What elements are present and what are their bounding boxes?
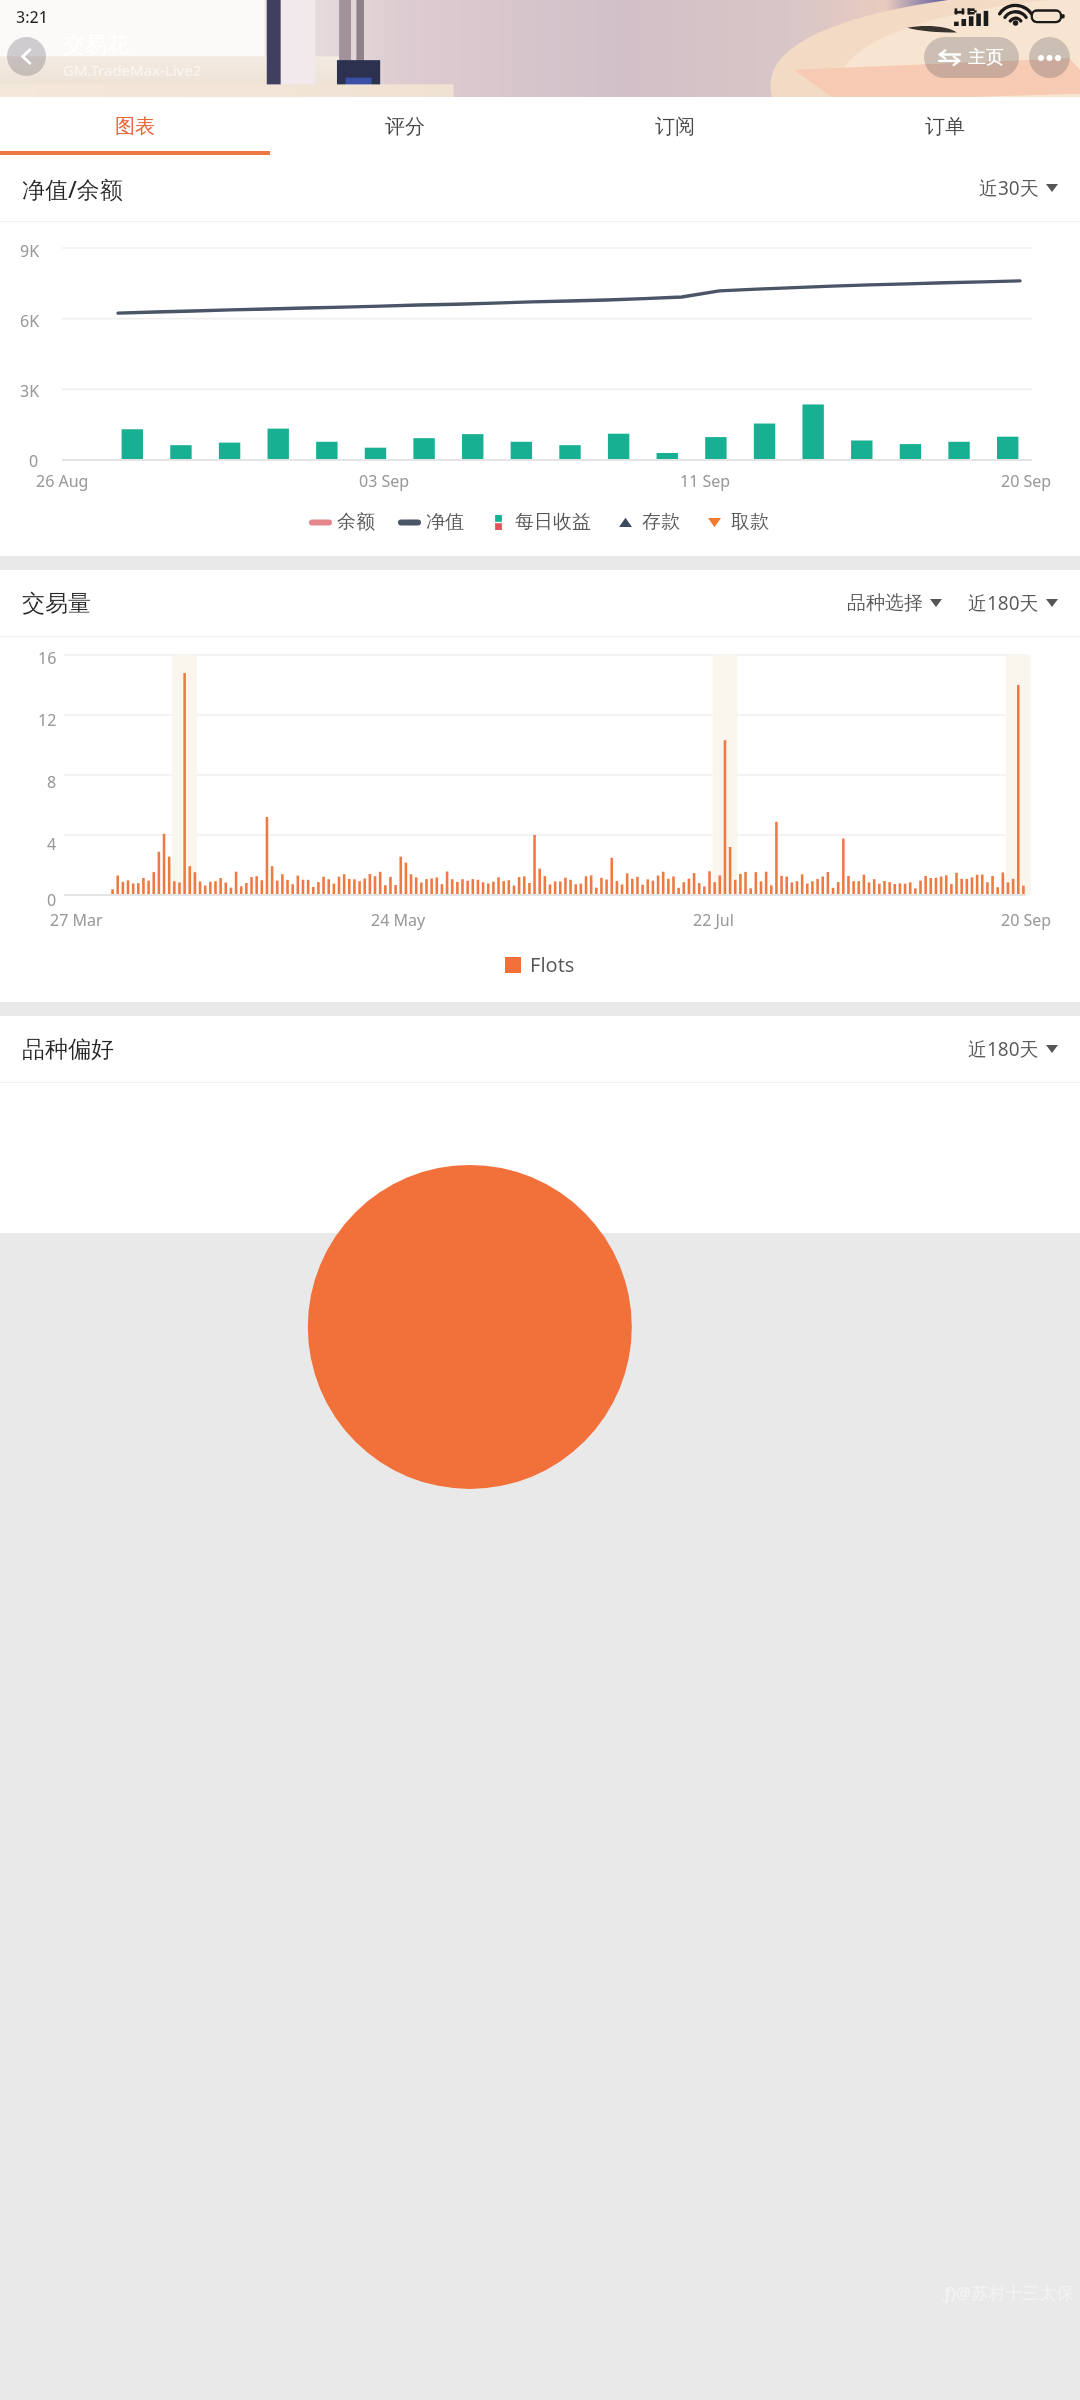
staticText: 03 Sep [359, 470, 410, 492]
button[interactable]: 订阅 [540, 97, 810, 155]
button[interactable]: Back [7, 37, 46, 76]
staticText: 净值/余额 [22, 173, 123, 204]
staticText: 近30天 [979, 175, 1039, 201]
staticText: 交易量 [22, 589, 91, 618]
staticText: 0 [29, 450, 39, 468]
button[interactable]: 评分 [270, 97, 540, 155]
staticText: 6K [20, 310, 40, 332]
staticText: 27 Mar [50, 909, 103, 931]
staticText: 订阅 [655, 114, 695, 139]
staticText: 订单 [925, 114, 965, 139]
staticText: 20 Sep [1001, 470, 1052, 492]
staticText: 评分 [385, 114, 425, 139]
staticText: 图表 [115, 114, 155, 139]
button[interactable]: 主页 [924, 37, 1019, 78]
staticText: 12 [38, 709, 57, 731]
button[interactable]: Flots [505, 951, 575, 978]
staticText: 16 [38, 647, 57, 669]
staticText: 取款 [731, 510, 769, 534]
staticText: 0 [47, 889, 57, 907]
staticText: 22 Jul [693, 909, 734, 931]
staticText: 近180天 [968, 1036, 1039, 1062]
staticText: 24 May [371, 909, 426, 931]
staticText: 3K [20, 380, 40, 402]
button[interactable]: More options [1029, 37, 1070, 78]
button[interactable]: 订单 [810, 97, 1080, 155]
staticText: 每日收益 [515, 510, 591, 534]
button[interactable]: 取款 [706, 510, 769, 534]
staticText: GM.TradeMax-Live2 [63, 60, 202, 80]
staticText: 20 Sep [1001, 909, 1052, 931]
staticText: 品种偏好 [22, 1035, 114, 1064]
staticText: ƒ)@苏村十三太保 [943, 2281, 1074, 2304]
button[interactable]: 图表 [0, 97, 270, 155]
staticText: 3:21 [16, 6, 48, 28]
staticText: 净值 [426, 510, 464, 534]
staticText: 9K [20, 240, 40, 262]
button[interactable]: 近30天 [979, 175, 1058, 201]
staticText: 近180天 [968, 590, 1039, 616]
staticText: 主页 [968, 46, 1004, 69]
button[interactable]: 近180天 [968, 590, 1058, 616]
button[interactable]: 净值 [401, 510, 464, 534]
staticText: 4 [47, 833, 57, 855]
staticText: Flots [530, 951, 575, 978]
staticText: 余额 [337, 510, 375, 534]
button[interactable]: 品种选择 [847, 591, 942, 615]
staticText: 8 [47, 771, 57, 793]
button[interactable]: 近180天 [968, 1036, 1058, 1062]
staticText: 26 Aug [36, 470, 89, 492]
staticText: 交易花 [63, 31, 129, 59]
button[interactable]: 存款 [617, 510, 680, 534]
button[interactable]: 每日收益 [490, 510, 591, 534]
staticText: 品种选择 [847, 591, 923, 615]
button[interactable]: 余额 [312, 510, 375, 534]
staticText: 存款 [642, 510, 680, 534]
staticText: 11 Sep [680, 470, 731, 492]
